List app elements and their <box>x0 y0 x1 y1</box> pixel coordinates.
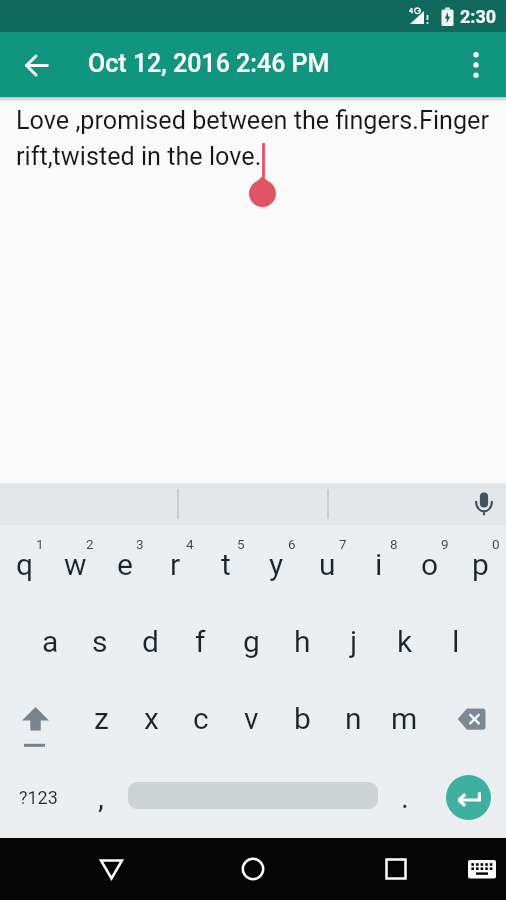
button[interactable]: 7 <box>302 525 353 603</box>
button[interactable] <box>469 489 499 519</box>
staticText: o <box>421 547 439 582</box>
button[interactable]: v <box>226 680 277 757</box>
staticText: 9 <box>441 536 449 552</box>
button[interactable] <box>13 41 61 89</box>
button[interactable]: 2 <box>50 525 100 603</box>
staticText: g <box>243 624 260 659</box>
button[interactable] <box>430 680 506 757</box>
staticText: m <box>391 701 418 736</box>
button[interactable]: x <box>126 680 176 757</box>
staticText: , <box>98 780 104 815</box>
button[interactable] <box>460 49 492 81</box>
button[interactable]: ?123 <box>0 757 76 838</box>
button[interactable]: 8 <box>353 525 404 603</box>
staticText: l <box>452 624 460 659</box>
button[interactable]: d <box>125 603 175 680</box>
staticText: 0 <box>492 536 500 552</box>
staticText: p <box>472 547 489 582</box>
button[interactable] <box>373 846 419 892</box>
staticText: q <box>16 547 34 582</box>
button[interactable]: s <box>75 603 125 680</box>
staticText: i <box>375 547 383 582</box>
staticText: c <box>193 701 209 736</box>
staticText: a <box>42 624 59 659</box>
staticText: k <box>397 624 413 659</box>
button[interactable] <box>465 852 499 886</box>
staticText: 7 <box>339 536 347 552</box>
staticText: . <box>401 780 409 815</box>
button[interactable] <box>446 775 491 820</box>
button[interactable]: a <box>25 603 75 680</box>
button[interactable]: 6 <box>251 525 302 603</box>
staticText: Oct 12, 2016 2:46 PM <box>88 49 330 78</box>
staticText: 4 <box>186 536 194 552</box>
button[interactable]: z <box>76 680 126 757</box>
button[interactable]: h <box>277 603 328 680</box>
staticText: r <box>170 547 181 582</box>
staticText: x <box>144 701 159 736</box>
button[interactable]: g <box>226 603 277 680</box>
button[interactable]: 1 <box>0 525 50 603</box>
staticText: 6 <box>288 536 296 552</box>
button[interactable]: . <box>380 757 430 838</box>
button[interactable]: m <box>379 680 430 757</box>
staticText: d <box>142 624 159 659</box>
staticText: b <box>294 701 311 736</box>
staticText: 5 <box>237 536 245 552</box>
staticText: s <box>92 624 108 659</box>
button[interactable]: c <box>176 680 226 757</box>
staticText: f <box>195 624 206 659</box>
staticText: z <box>94 701 109 736</box>
button[interactable]: n <box>328 680 379 757</box>
button[interactable]: 4 <box>150 525 200 603</box>
button[interactable]: f <box>175 603 226 680</box>
button[interactable]: k <box>379 603 430 680</box>
staticText: n <box>345 701 362 736</box>
button[interactable] <box>230 846 276 892</box>
staticText: 2:30 <box>460 6 497 27</box>
staticText: e <box>117 547 133 582</box>
button[interactable]: 3 <box>100 525 150 603</box>
staticText: 8 <box>390 536 398 552</box>
button[interactable]: 9 <box>404 525 455 603</box>
staticText: t <box>221 547 231 582</box>
staticText: y <box>269 547 284 582</box>
button[interactable]: , <box>76 757 126 838</box>
button[interactable] <box>88 846 134 892</box>
staticText: Love ,promised between the fingers.Finge… <box>16 106 489 171</box>
staticText: 3 <box>136 536 144 552</box>
staticText: v <box>244 701 259 736</box>
button[interactable]: j <box>328 603 379 680</box>
staticText: ?123 <box>19 787 58 808</box>
staticText: j <box>350 624 358 659</box>
button[interactable]: 5 <box>200 525 251 603</box>
button[interactable] <box>0 680 76 757</box>
button[interactable]: Love ,promised between the fingers.Finge… <box>0 97 506 483</box>
staticText: w <box>64 547 87 582</box>
button[interactable] <box>126 757 380 838</box>
button[interactable]: b <box>277 680 328 757</box>
staticText: u <box>319 547 336 582</box>
staticText: 1 <box>36 536 44 552</box>
staticText: h <box>294 624 311 659</box>
button[interactable]: l <box>430 603 481 680</box>
button[interactable]: 0 <box>455 525 506 603</box>
staticText: 2 <box>86 536 94 552</box>
